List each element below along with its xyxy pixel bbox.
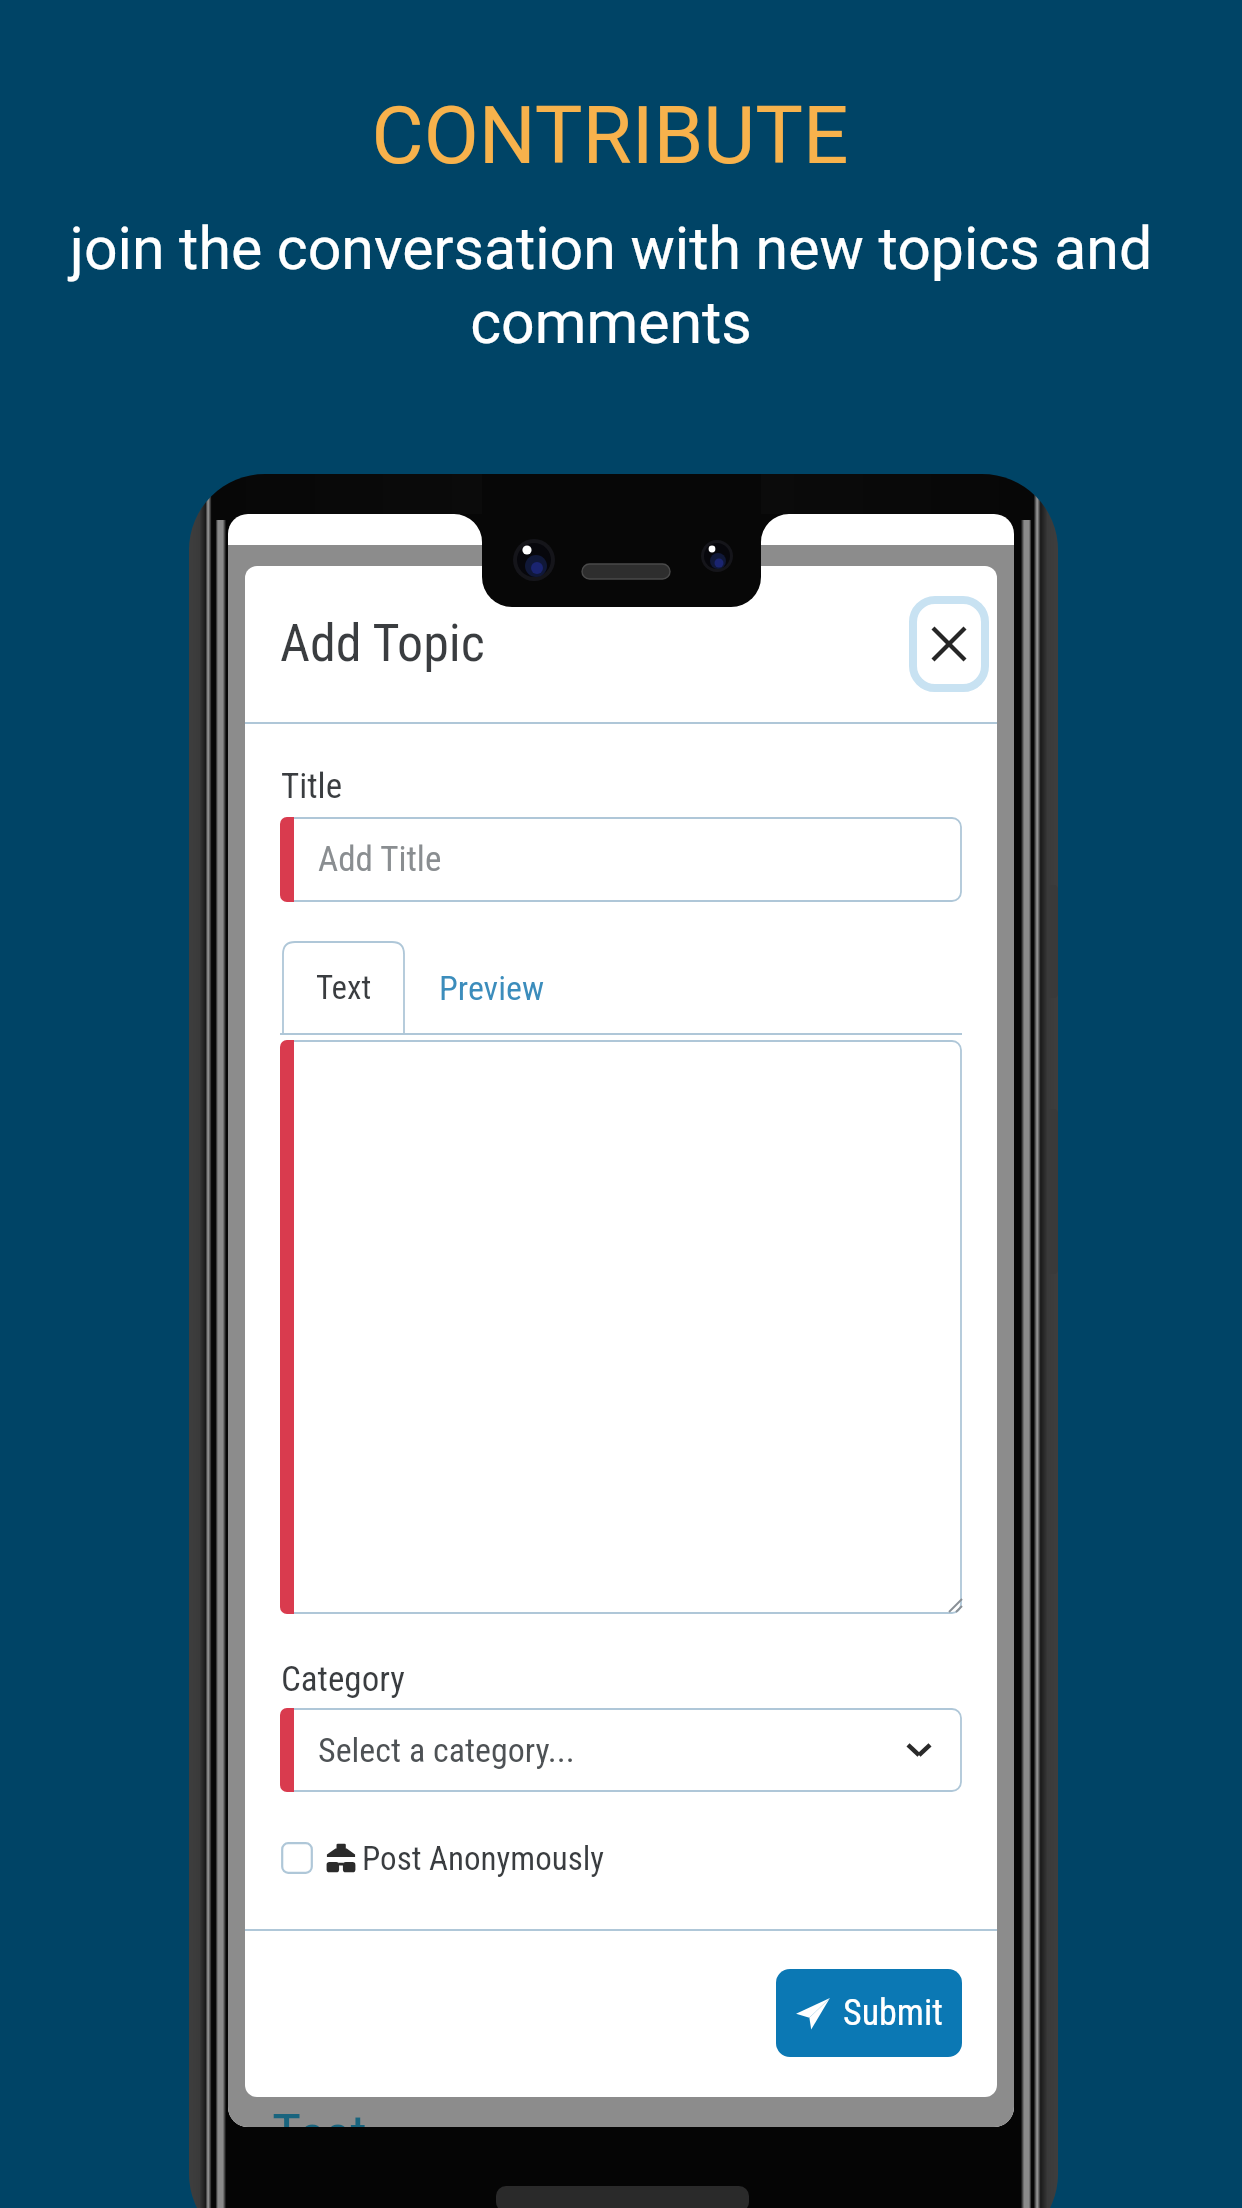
staticText: Add Topic <box>280 613 485 674</box>
button[interactable]: Post Anonymously <box>281 1836 605 1880</box>
button[interactable] <box>280 1040 962 1614</box>
button[interactable]: Select a category... <box>280 1708 962 1792</box>
staticText: Title <box>281 766 343 807</box>
staticText: Post Anonymously <box>362 1839 605 1878</box>
staticText: join the conversation with new topics an… <box>26 214 1196 357</box>
staticText: CONTRIBUTE <box>0 89 1231 183</box>
staticText: Preview <box>439 968 544 1008</box>
staticText: Test <box>272 2102 367 2127</box>
staticText: Select a category... <box>318 1730 906 1770</box>
button[interactable]: Close <box>909 596 989 692</box>
staticText: Submit <box>843 1992 943 2034</box>
button[interactable]: Add Title <box>280 817 962 902</box>
button[interactable]: Preview <box>401 941 581 1034</box>
staticText: Add Title <box>318 839 442 880</box>
staticText: Text <box>316 968 372 1007</box>
staticText: Category <box>281 1659 405 1700</box>
button[interactable]: Text <box>282 941 405 1034</box>
button[interactable]: Submit <box>776 1969 962 2057</box>
